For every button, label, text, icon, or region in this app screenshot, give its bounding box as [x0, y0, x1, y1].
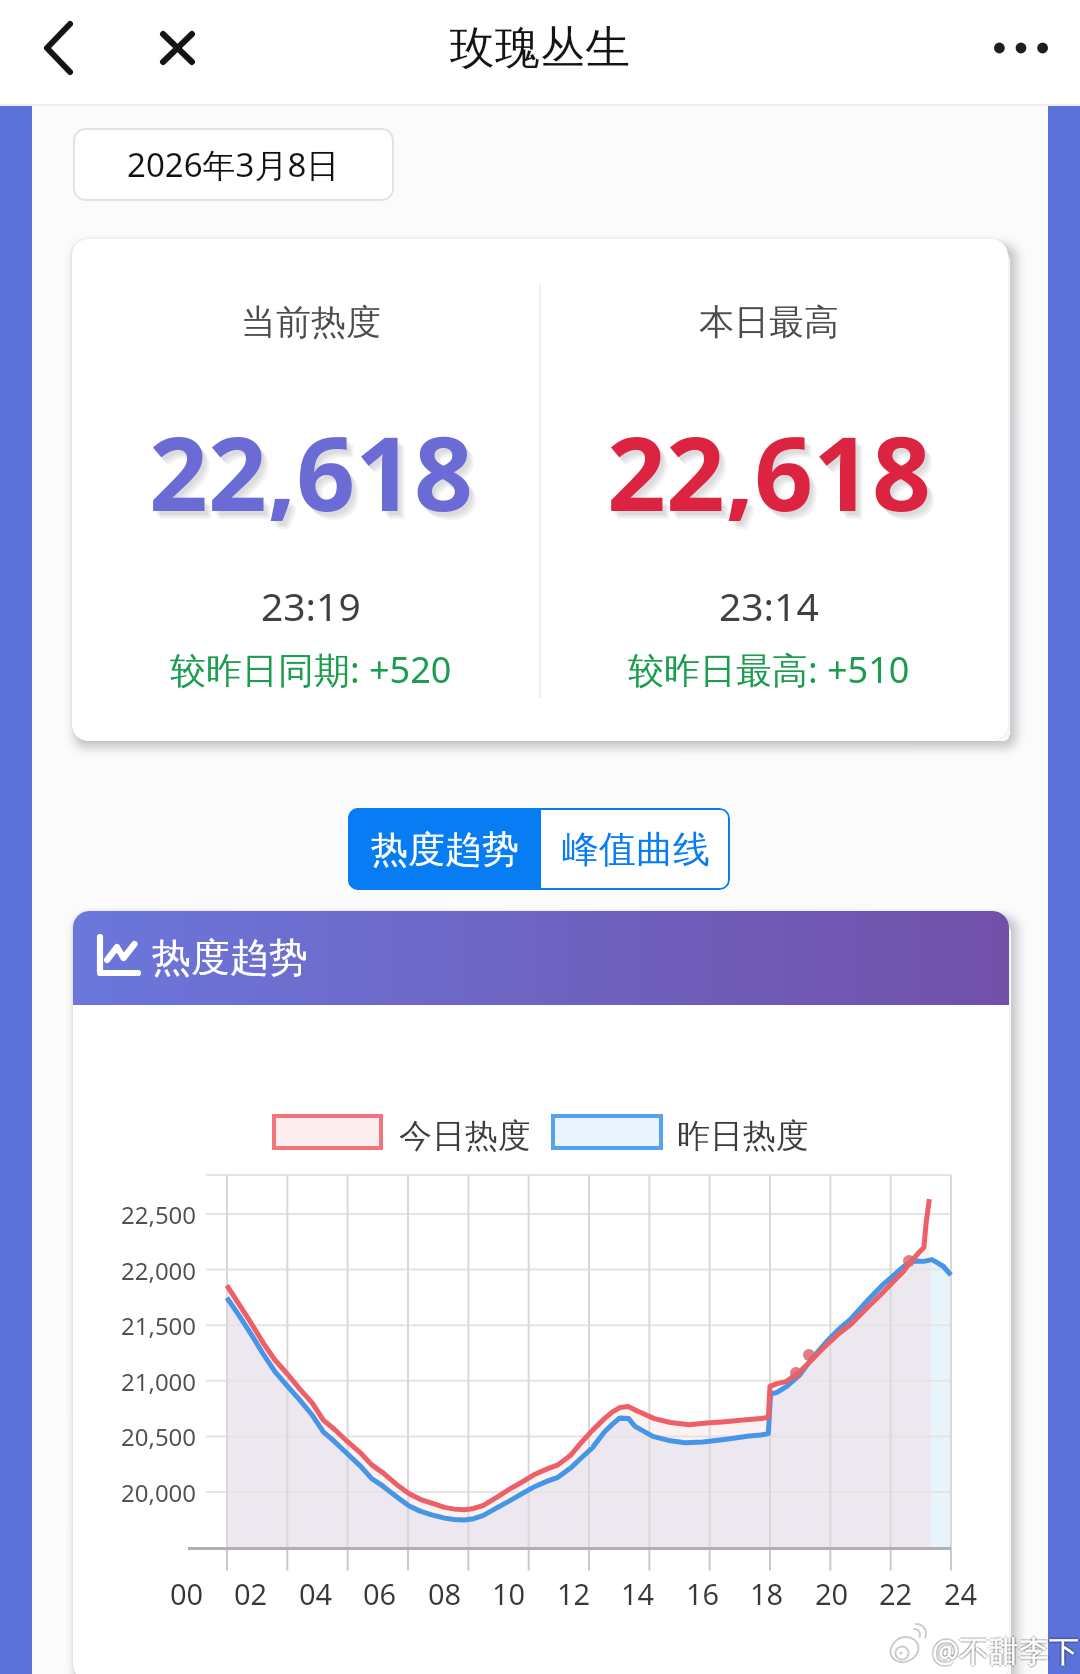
button[interactable]: Back — [14, 4, 102, 92]
staticText: 较昨日同期: +520 — [170, 645, 452, 689]
button[interactable]: 峰值曲线 — [541, 808, 730, 890]
staticText: 22,618 — [152, 405, 476, 525]
staticText: 20,500 — [121, 1420, 197, 1453]
staticText: 18 — [750, 1574, 784, 1612]
staticText: 22,618 — [612, 407, 936, 527]
staticText: 本日最高 — [699, 300, 839, 344]
staticText: 22,618 — [149, 401, 473, 521]
staticText: 21,500 — [121, 1309, 197, 1342]
button[interactable]: More options — [977, 4, 1065, 92]
staticText: @不甜李下 — [932, 1628, 1079, 1669]
staticText: 22,000 — [121, 1254, 197, 1287]
staticText: @不甜李下 — [934, 1630, 1080, 1671]
staticText: @不甜李下 — [932, 1630, 1079, 1671]
staticText: 峰值曲线 — [562, 826, 710, 873]
staticText: 22,618 — [156, 409, 480, 529]
button[interactable]: 热度趋势 — [348, 808, 541, 890]
staticText: 24 — [944, 1574, 978, 1612]
staticText: @不甜李下 — [930, 1630, 1077, 1671]
staticText: 昨日热度 — [677, 1115, 809, 1157]
staticText: 06 — [363, 1574, 397, 1612]
button[interactable]: Close — [133, 4, 221, 92]
staticText: 22,618 — [607, 401, 931, 521]
staticText: 20 — [815, 1574, 849, 1612]
staticText: 22,618 — [610, 405, 934, 525]
staticText: 22,500 — [121, 1198, 197, 1231]
staticText: 04 — [299, 1574, 333, 1612]
staticText: 14 — [621, 1574, 655, 1612]
staticText: 2026年3月8日 — [127, 142, 340, 187]
staticText: 热度趋势 — [371, 826, 519, 873]
staticText: 10 — [492, 1574, 526, 1612]
button[interactable]: 2026年3月8日 — [73, 128, 394, 201]
staticText: 23:19 — [261, 579, 361, 623]
staticText: 00 — [170, 1574, 204, 1612]
staticText: 当前热度 — [241, 300, 381, 344]
staticText: 12 — [557, 1574, 591, 1612]
staticText: 热度趋势 — [152, 933, 308, 982]
staticText: @不甜李下 — [932, 1632, 1079, 1673]
staticText: 21,000 — [121, 1365, 197, 1398]
staticText: 23:14 — [719, 579, 819, 623]
staticText: 22,618 — [614, 409, 938, 529]
staticText: 20,000 — [121, 1476, 197, 1509]
staticText: 今日热度 — [399, 1115, 531, 1157]
staticText: 较昨日最高: +510 — [628, 645, 910, 689]
staticText: 02 — [234, 1574, 268, 1612]
staticText: 16 — [686, 1574, 720, 1612]
staticText: 08 — [428, 1574, 462, 1612]
staticText: 玫瑰丛生 — [450, 20, 630, 77]
staticText: 22,618 — [154, 407, 478, 527]
staticText: 22 — [879, 1574, 913, 1612]
